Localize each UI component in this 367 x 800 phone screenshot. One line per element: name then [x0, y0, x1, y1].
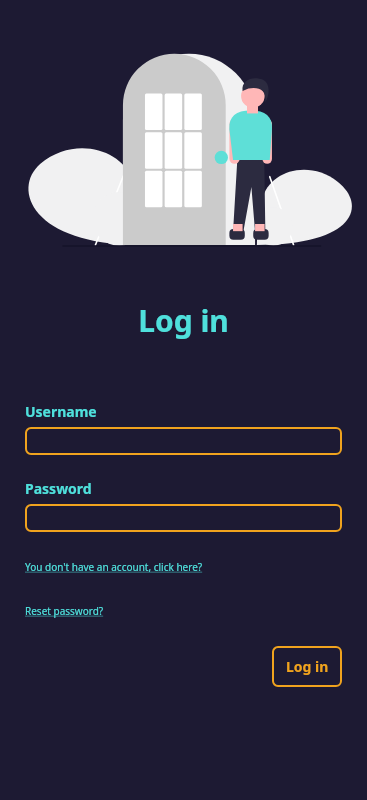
button[interactable]: [25, 504, 342, 532]
button[interactable]: [25, 427, 342, 455]
button[interactable]: Log in: [272, 646, 342, 687]
staticText: Username: [25, 402, 97, 421]
staticText: Log in: [286, 657, 329, 676]
button[interactable]: You don't have an account, click here?: [25, 560, 203, 574]
staticText: Password: [25, 479, 92, 498]
button[interactable]: Reset password?: [25, 604, 104, 618]
staticText: Reset password?: [25, 604, 104, 618]
staticText: You don't have an account, click here?: [25, 560, 203, 574]
staticText: Log in: [0, 300, 367, 341]
